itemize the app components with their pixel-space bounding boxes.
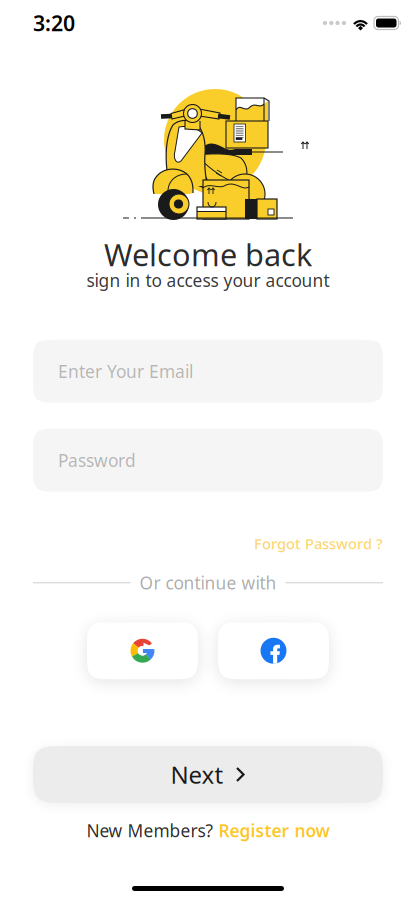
staticText: Forgot Password ?	[254, 534, 383, 553]
staticText: 3:20	[33, 9, 75, 37]
staticText: Register now	[218, 819, 329, 842]
button[interactable]: Next	[33, 746, 383, 803]
staticText: Next	[170, 758, 223, 790]
staticText: Or continue with	[139, 571, 276, 594]
staticText: Password	[58, 449, 136, 472]
button[interactable]: Forgot Password ?	[254, 534, 383, 553]
staticText: Enter Your Email	[58, 360, 193, 383]
button[interactable]: Sign in with Google	[87, 622, 198, 679]
button[interactable]: Register now	[218, 819, 329, 842]
button[interactable]: Password	[33, 429, 383, 492]
staticText: sign in to access your account	[86, 269, 329, 292]
staticText: Welcome back	[104, 234, 312, 275]
button[interactable]: Sign in with Facebook	[218, 622, 329, 679]
staticText: New Members?	[86, 819, 213, 842]
button[interactable]: Enter Your Email	[33, 340, 383, 403]
